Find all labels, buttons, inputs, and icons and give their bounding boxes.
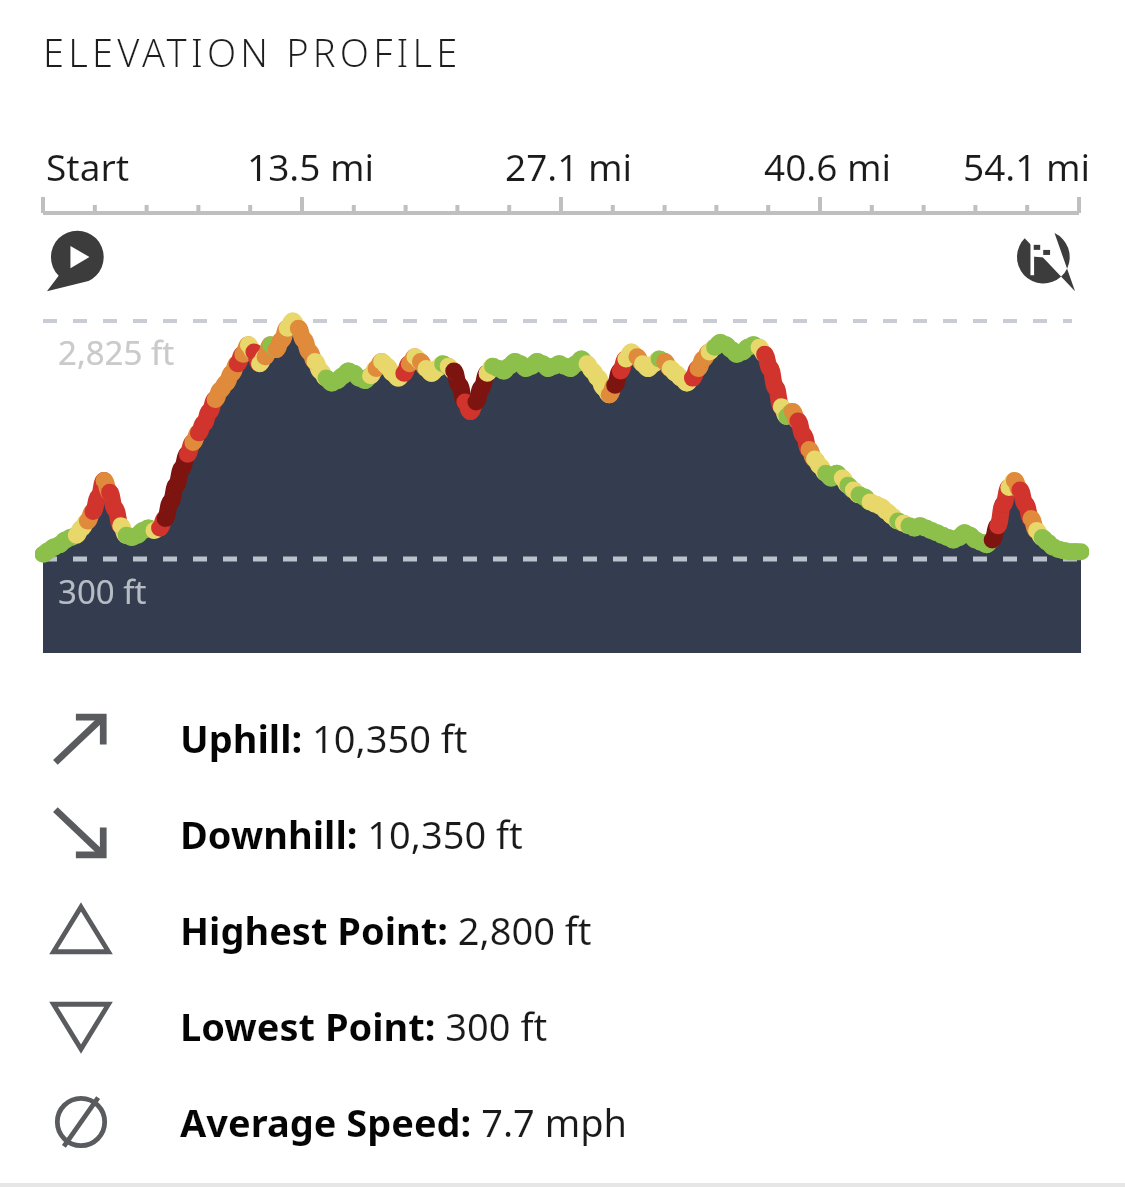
other: Average speed	[49, 1090, 113, 1154]
button[interactable]: 2,825 ft	[0, 313, 1125, 657]
staticText: 300 ft	[58, 569, 147, 614]
button[interactable]: Finish of route	[1013, 228, 1079, 294]
button[interactable]: Downhill	[0, 786, 1125, 882]
other: Downhill	[49, 802, 113, 866]
button[interactable]: Average speed	[0, 1074, 1125, 1170]
staticText: 40.6 mi	[764, 141, 892, 191]
staticText: 13.5 mi	[247, 141, 375, 191]
button[interactable]: Uphill	[0, 690, 1125, 786]
staticText: ELEVATION PROFILE	[43, 26, 462, 78]
other: Uphill	[49, 706, 113, 770]
staticText: 54.1 mi	[963, 141, 1091, 191]
staticText: Average Speed: 7.7 mph	[180, 1096, 628, 1148]
button[interactable]: Start of route	[43, 228, 109, 294]
staticText: Lowest Point: 300 ft	[180, 1000, 548, 1052]
staticText: 2,825 ft	[58, 330, 175, 375]
button[interactable]: Highest point	[0, 882, 1125, 978]
staticText: Start	[46, 141, 130, 191]
staticText: Downhill: 10,350 ft	[180, 808, 523, 860]
staticText: 27.1 mi	[505, 141, 633, 191]
button[interactable]: Lowest point	[0, 978, 1125, 1074]
other: Highest point	[49, 898, 113, 962]
other: Lowest point	[49, 994, 113, 1058]
staticText: Highest Point: 2,800 ft	[180, 904, 592, 956]
staticText: Uphill: 10,350 ft	[180, 712, 468, 764]
